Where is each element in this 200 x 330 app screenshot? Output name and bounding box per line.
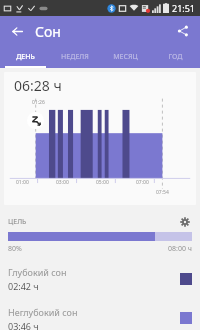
button[interactable]: Неглубокий сон: [8, 306, 192, 330]
staticText: 08:00 ч: [168, 244, 192, 254]
staticText: 03:00: [56, 179, 69, 186]
button[interactable]: ГОД: [150, 46, 200, 68]
staticText: 21:51: [172, 2, 196, 14]
button[interactable]: Share: [172, 20, 194, 42]
staticText: 07:54: [156, 189, 169, 196]
staticText: НЕДЕЛЯ: [61, 52, 89, 62]
staticText: Сон: [35, 22, 61, 41]
staticText: ЦЕЛЬ: [8, 217, 27, 227]
staticText: 07:00: [136, 179, 149, 186]
staticText: Неглубокий сон: [8, 306, 78, 318]
button[interactable]: Глубокий сон: [8, 266, 192, 292]
button[interactable]: НЕДЕЛЯ: [50, 46, 100, 68]
button[interactable]: МЕСЯЦ: [100, 46, 150, 68]
staticText: Глубокий сон: [8, 266, 67, 278]
staticText: 03:46 ч: [8, 320, 39, 330]
staticText: 01:26: [32, 99, 45, 106]
staticText: 06:28 ч: [14, 76, 62, 95]
staticText: ГОД: [168, 52, 183, 62]
staticText: 05:00: [96, 179, 109, 186]
staticText: 02:42 ч: [8, 280, 39, 292]
staticText: МЕСЯЦ: [113, 52, 138, 62]
staticText: 01:00: [16, 179, 29, 186]
button[interactable]: ЦЕЛЬ: [8, 215, 192, 254]
staticText: 80%: [8, 244, 22, 254]
button[interactable]: ДЕНЬ: [0, 46, 50, 68]
staticText: ДЕНЬ: [16, 52, 35, 62]
button[interactable]: Back: [6, 20, 28, 42]
button[interactable]: Goal settings: [178, 215, 192, 229]
